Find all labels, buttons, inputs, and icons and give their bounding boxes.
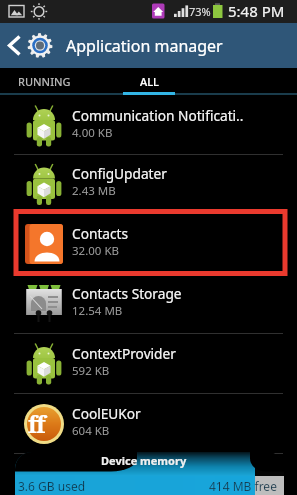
staticText: ff <box>28 408 46 439</box>
staticText: 73% <box>189 4 211 19</box>
staticText: RUNNING <box>18 74 71 89</box>
staticText: 4.00 KB <box>72 125 113 141</box>
staticText: 5:48 PM <box>228 1 285 21</box>
staticText: 3.6 GB used <box>18 478 86 494</box>
staticText: ALL <box>140 74 159 89</box>
staticText: ConfigUpdater <box>72 164 167 183</box>
staticText: 604 KB <box>72 423 110 439</box>
staticText: 2.43 MB <box>72 183 116 199</box>
staticText: Application manager <box>66 35 223 57</box>
staticText: 414 MB free <box>209 478 277 494</box>
staticText: 32.00 KB <box>72 243 119 259</box>
staticText: 592 KB <box>72 363 110 379</box>
staticText: ContextProvider <box>72 344 176 363</box>
staticText: Communication Notificati.. <box>72 106 244 125</box>
button[interactable]: Back <box>0 23 30 68</box>
staticText: 12.54 MB <box>72 303 123 319</box>
button[interactable]: RUNNING <box>0 68 88 94</box>
button[interactable]: Communication Notificati.. <box>0 97 297 155</box>
button[interactable]: ConfigUpdater <box>0 155 297 214</box>
button[interactable]: Contacts Storage <box>0 274 297 334</box>
staticText: Device memory <box>101 453 187 468</box>
button[interactable]: Contacts <box>0 214 297 274</box>
button[interactable]: ALL <box>105 68 193 94</box>
button[interactable]: ContextProvider <box>0 334 297 394</box>
button[interactable]: ff <box>0 394 297 454</box>
staticText: CoolEUKor <box>72 404 141 423</box>
button[interactable]: Settings <box>27 23 54 68</box>
staticText: Contacts <box>72 224 129 243</box>
staticText: Contacts Storage <box>72 284 182 303</box>
